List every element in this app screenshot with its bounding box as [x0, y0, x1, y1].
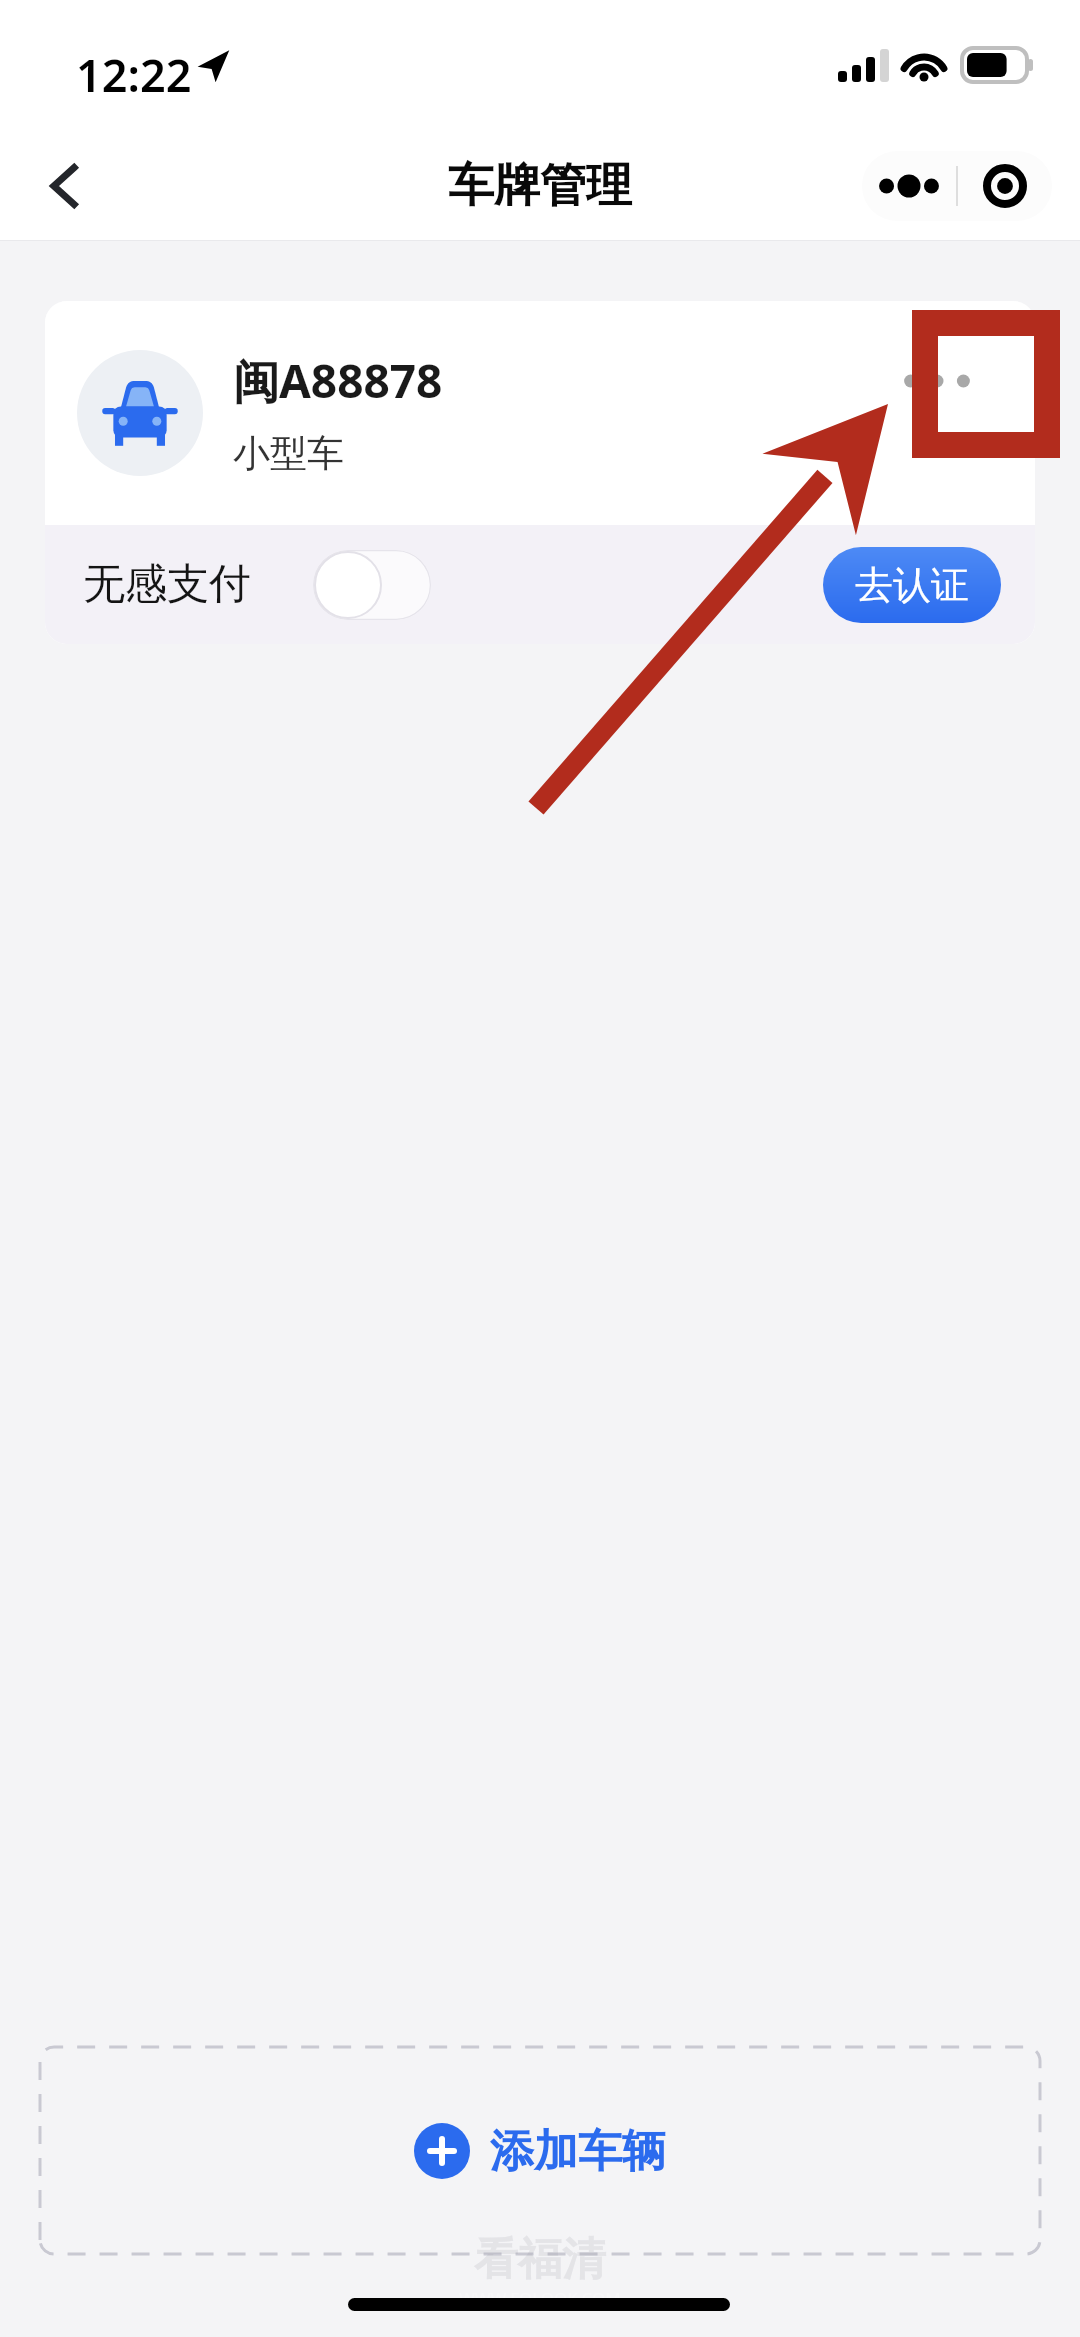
- staticText: 看福清: [474, 2232, 606, 2287]
- button[interactable]: 去认证: [823, 547, 1001, 623]
- staticText: 无感支付: [83, 558, 251, 611]
- staticText: 闽A88878: [233, 349, 443, 412]
- staticText: 小型车: [233, 430, 344, 477]
- button[interactable]: More options: [863, 307, 1011, 455]
- staticText: 12:22: [76, 44, 192, 105]
- button[interactable]: 添加车辆: [40, 2047, 1040, 2254]
- staticText: 添加车辆: [490, 2124, 666, 2179]
- button[interactable]: Close mini program: [958, 151, 1052, 221]
- button[interactable]: Back: [26, 148, 102, 224]
- staticText: WWW.FOLOOK.COM: [459, 2287, 621, 2310]
- button[interactable]: More: [862, 151, 956, 221]
- button[interactable]: Toggle contactless payment: [313, 550, 431, 620]
- staticText: 车牌管理: [448, 157, 632, 215]
- button[interactable]: 闽A88878: [45, 301, 1035, 525]
- staticText: 去认证: [855, 561, 969, 609]
